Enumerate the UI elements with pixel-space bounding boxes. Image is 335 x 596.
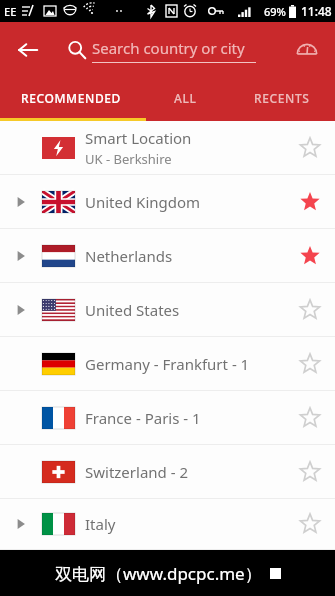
button[interactable]: Remove favourite xyxy=(285,229,335,282)
button[interactable]: ALL xyxy=(142,78,228,118)
button[interactable]: Add favourite xyxy=(285,499,335,549)
button[interactable]: Germany - Frankfurt - 1 xyxy=(0,337,335,391)
button[interactable]: Search country or city xyxy=(92,38,245,58)
staticText: Italy xyxy=(85,514,116,534)
staticText: France - Paris - 1 xyxy=(85,408,201,428)
button[interactable]: Add favourite xyxy=(285,121,335,174)
button[interactable]: Back xyxy=(8,30,48,70)
button[interactable]: United Kingdom xyxy=(0,175,335,229)
staticText: RECOMMENDED xyxy=(21,90,121,106)
button[interactable]: RECOMMENDED xyxy=(0,78,142,118)
button[interactable]: Netherlands xyxy=(0,229,335,283)
staticText: United States xyxy=(85,300,180,320)
staticText: UK - Berkshire xyxy=(85,150,172,168)
staticText: ALL xyxy=(174,90,197,106)
button[interactable]: Add favourite xyxy=(285,391,335,444)
button[interactable]: Speed test xyxy=(287,30,327,70)
staticText: EE xyxy=(4,4,17,19)
staticText: Switzerland - 2 xyxy=(85,462,189,482)
button[interactable]: Italy xyxy=(0,499,335,550)
button[interactable]: United States xyxy=(0,283,335,337)
staticText: Germany - Frankfurt - 1 xyxy=(85,354,250,374)
button[interactable]: Switzerland - 2 xyxy=(0,445,335,499)
staticText: Smart Location xyxy=(85,128,192,148)
staticText: United Kingdom xyxy=(85,192,201,212)
staticText: 双电网（www.dpcpc.me） xyxy=(55,562,262,585)
button[interactable]: Add favourite xyxy=(285,283,335,336)
staticText: RECENTS xyxy=(254,90,310,106)
button[interactable]: RECENTS xyxy=(228,78,335,118)
button[interactable]: Add favourite xyxy=(285,337,335,390)
button[interactable]: Remove favourite xyxy=(285,175,335,228)
button[interactable]: France - Paris - 1 xyxy=(0,391,335,445)
button[interactable]: Add favourite xyxy=(285,445,335,498)
staticText: 69% xyxy=(264,4,286,19)
button[interactable]: Smart Location xyxy=(0,121,335,175)
staticText: 11:48 xyxy=(301,3,332,19)
staticText: Netherlands xyxy=(85,246,173,266)
